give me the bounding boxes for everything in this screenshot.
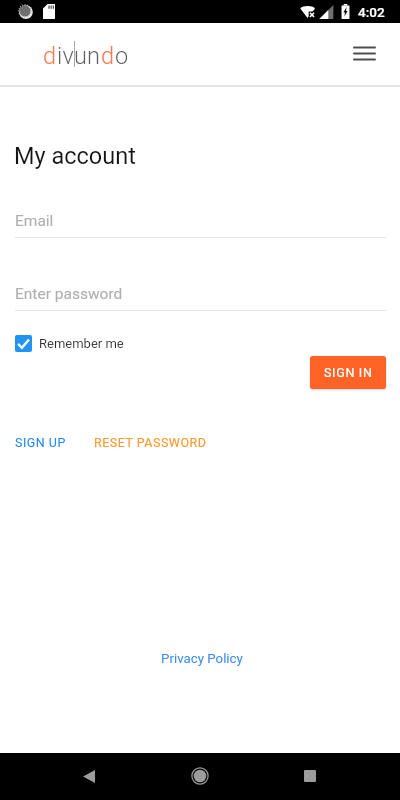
staticText: iv — [57, 42, 74, 70]
button[interactable]: Menu — [348, 37, 381, 70]
button[interactable]: Back — [69, 756, 109, 796]
button[interactable]: SIGN IN — [310, 356, 386, 389]
staticText: Email — [15, 212, 54, 230]
button[interactable]: RESET PASSWORD — [94, 435, 207, 450]
button[interactable]: Privacy Policy — [161, 651, 243, 667]
staticText: o — [115, 42, 129, 70]
staticText: My account — [14, 142, 136, 170]
staticText: Remember me — [39, 336, 124, 351]
staticText: SIGN IN — [324, 365, 373, 380]
staticText: d — [43, 42, 57, 70]
button[interactable]: Home — [180, 756, 220, 796]
staticText: un — [74, 42, 101, 70]
button[interactable]: Remember me — [15, 335, 124, 352]
staticText: d — [101, 42, 115, 70]
staticText: Enter password — [15, 285, 123, 303]
staticText: 4:02 — [358, 4, 385, 20]
button[interactable]: SIGN UP — [15, 435, 66, 450]
button[interactable]: Recents — [290, 756, 330, 796]
